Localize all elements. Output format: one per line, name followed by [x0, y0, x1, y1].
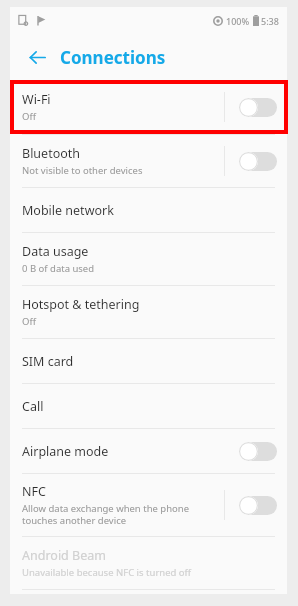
- button[interactable]: Airplane mode: [10, 429, 287, 473]
- button[interactable]: Toggle: [239, 495, 277, 515]
- staticText: Wi-Fi: [22, 91, 51, 108]
- staticText: 5:38: [261, 15, 279, 27]
- staticText: 100%: [226, 15, 250, 27]
- staticText: Bluetooth: [22, 145, 81, 162]
- button[interactable]: Hotspot & tethering: [10, 286, 287, 338]
- staticText: 0 B of data used: [22, 262, 95, 275]
- button[interactable]: Bluetooth: [10, 135, 287, 187]
- staticText: Data usage: [22, 243, 89, 260]
- button[interactable]: Toggle: [239, 441, 277, 461]
- staticText: Off: [22, 110, 36, 123]
- button[interactable]: NFC: [10, 474, 287, 536]
- staticText: Airplane mode: [22, 443, 109, 460]
- staticText: Mobile network: [22, 202, 114, 219]
- staticText: Call: [22, 398, 44, 415]
- button[interactable]: Toggle: [239, 97, 277, 117]
- staticText: Unavailable because NFC is turned off: [22, 566, 192, 579]
- button[interactable]: SIM card: [10, 339, 287, 383]
- staticText: Off: [22, 315, 36, 328]
- staticText: Connections: [60, 46, 166, 69]
- button[interactable]: Toggle: [239, 151, 277, 171]
- button[interactable]: Wi-Fi: [10, 80, 287, 134]
- staticText: Allow data exchange when the phone touch…: [22, 502, 190, 527]
- staticText: Not visible to other devices: [22, 164, 143, 177]
- staticText: SIM card: [22, 353, 74, 370]
- button[interactable]: Back: [22, 42, 52, 72]
- button[interactable]: Mobile network: [10, 188, 287, 232]
- button[interactable]: Call: [10, 384, 287, 428]
- button[interactable]: Android Beam: [10, 537, 287, 589]
- staticText: NFC: [22, 483, 46, 500]
- staticText: Hotspot & tethering: [22, 296, 140, 313]
- staticText: Android Beam: [22, 547, 106, 564]
- button[interactable]: Data usage: [10, 233, 287, 285]
